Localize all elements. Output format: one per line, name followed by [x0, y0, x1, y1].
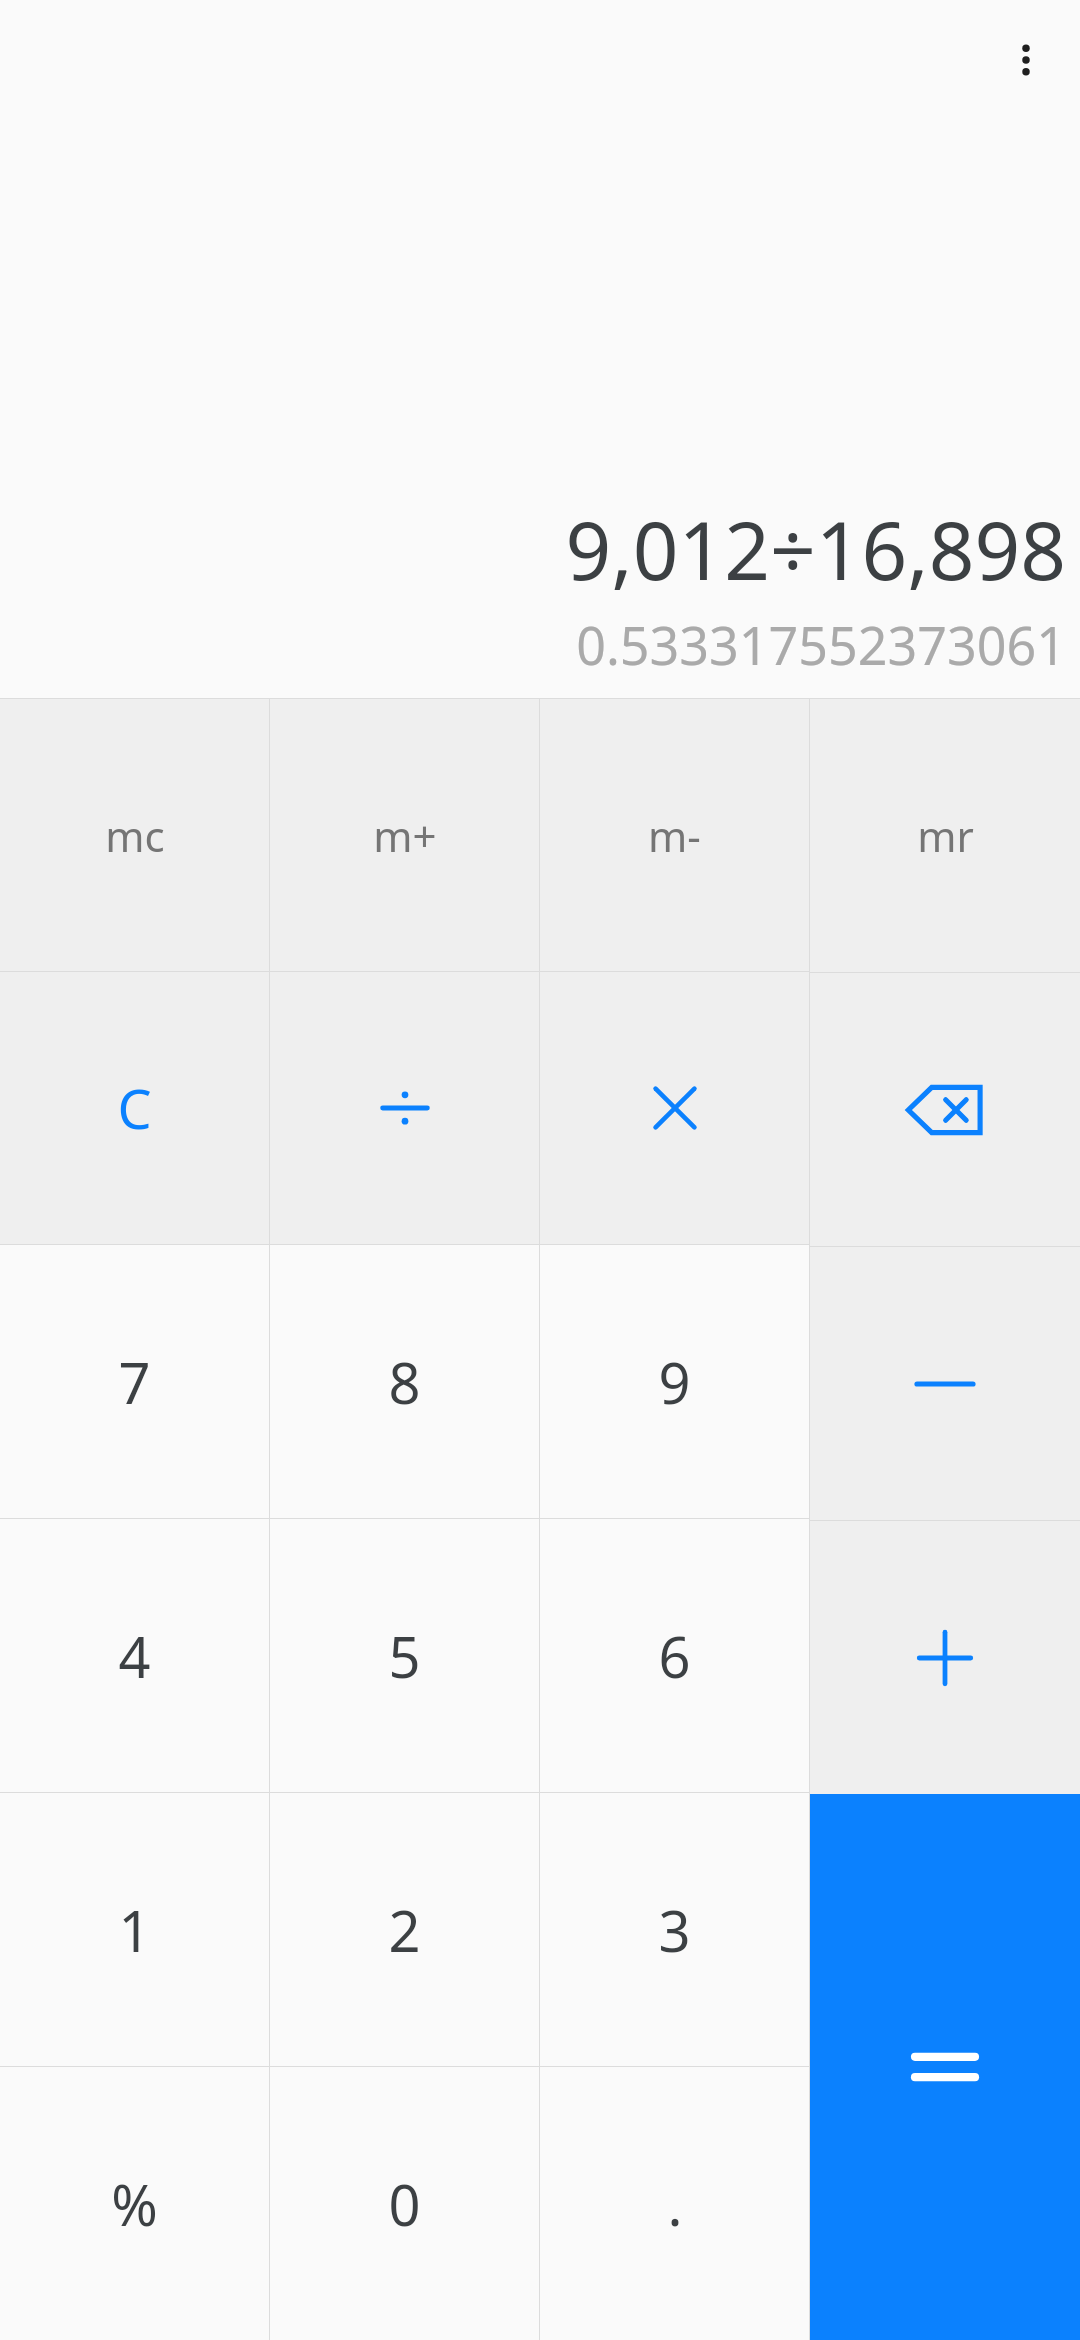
staticText: 9 — [658, 1344, 691, 1420]
button[interactable]: mr — [810, 699, 1080, 972]
staticText: 0.533317552373061 — [576, 609, 1066, 680]
button[interactable]: m- — [540, 699, 809, 971]
button[interactable]: C — [0, 972, 269, 1244]
staticText: C — [117, 1071, 152, 1145]
staticText: 2 — [388, 1892, 421, 1968]
staticText: 9,012÷16,898 — [565, 494, 1066, 603]
button[interactable]: % — [0, 2067, 269, 2340]
staticText: 8 — [388, 1344, 421, 1420]
staticText: 0 — [388, 2166, 421, 2242]
button[interactable]: 3 — [540, 1793, 809, 2066]
button[interactable]: mc — [0, 699, 269, 971]
staticText: 5 — [388, 1618, 421, 1694]
button[interactable]: Backspace — [810, 973, 1080, 1246]
button[interactable]: More options — [988, 22, 1064, 98]
staticText: 4 — [118, 1618, 151, 1694]
button[interactable]: 5 — [270, 1519, 539, 1792]
staticText: 1 — [118, 1892, 151, 1968]
button[interactable]: . — [540, 2067, 809, 2340]
button[interactable]: Plus — [810, 1521, 1080, 1794]
button[interactable]: 6 — [540, 1519, 809, 1792]
staticText: m- — [648, 807, 701, 864]
button[interactable]: 7 — [0, 1245, 269, 1518]
staticText: mr — [917, 807, 974, 864]
button[interactable]: Equals — [810, 1794, 1080, 2340]
button[interactable]: m+ — [270, 699, 539, 971]
button[interactable]: Divide — [270, 972, 539, 1244]
button[interactable]: Minus — [810, 1247, 1080, 1520]
button[interactable]: 2 — [270, 1793, 539, 2066]
button[interactable]: 4 — [0, 1519, 269, 1792]
staticText: m+ — [373, 807, 437, 864]
button[interactable]: 1 — [0, 1793, 269, 2066]
staticText: 6 — [658, 1618, 691, 1694]
button[interactable]: 9 — [540, 1245, 809, 1518]
staticText: 7 — [118, 1344, 151, 1420]
button[interactable]: Multiply — [540, 972, 809, 1244]
staticText: . — [667, 2166, 683, 2242]
staticText: % — [111, 2166, 158, 2242]
staticText: 3 — [658, 1892, 691, 1968]
button[interactable]: 8 — [270, 1245, 539, 1518]
button[interactable]: 0 — [270, 2067, 539, 2340]
staticText: mc — [105, 807, 165, 864]
